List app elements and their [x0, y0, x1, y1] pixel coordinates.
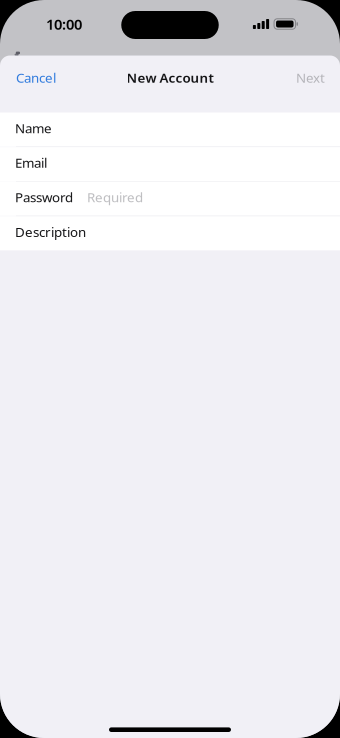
button[interactable]: Description [0, 216, 340, 250]
staticText: New Account [126, 69, 213, 86]
staticText: Cancel [16, 69, 56, 86]
staticText: Next [296, 69, 325, 86]
staticText: Email [15, 154, 47, 171]
staticText: Description [15, 223, 86, 241]
button[interactable]: Password [0, 182, 340, 216]
staticText: Name [15, 119, 52, 137]
staticText: Required [87, 188, 143, 206]
button[interactable]: Cancel [0, 58, 68, 97]
button[interactable]: Email [0, 147, 340, 181]
staticText: 10:00 [46, 14, 82, 34]
button[interactable]: Next [284, 58, 340, 97]
button[interactable]: Name [0, 112, 340, 146]
staticText: Password [15, 188, 73, 206]
